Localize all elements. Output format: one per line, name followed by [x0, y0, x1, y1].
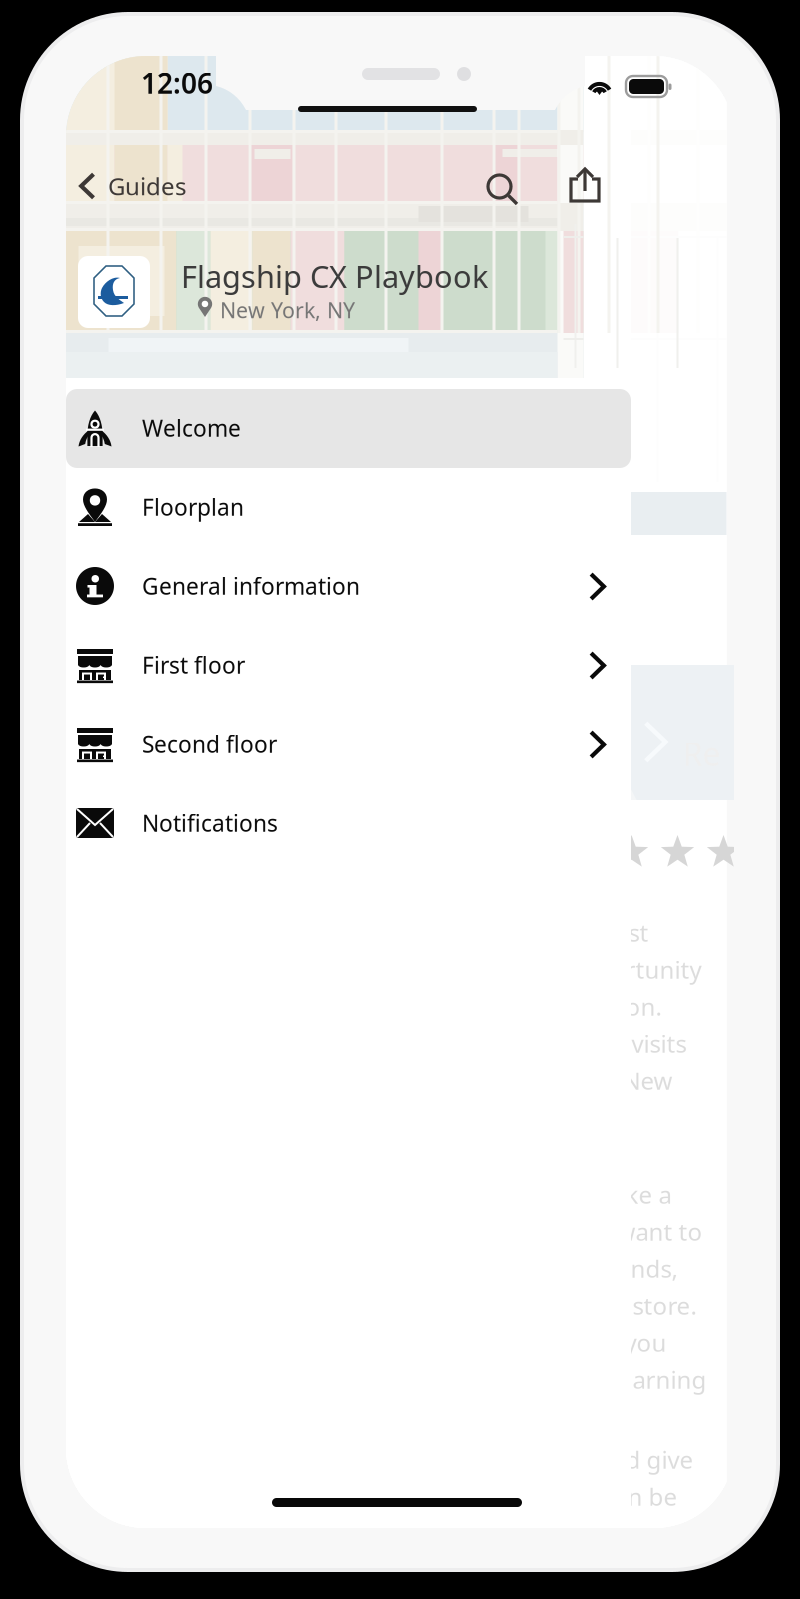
- staticText: ands,: [617, 1253, 677, 1284]
- staticText: Floorplan: [142, 492, 244, 522]
- staticText: Guides: [108, 170, 186, 202]
- button[interactable]: Notifications: [66, 784, 631, 863]
- button[interactable]: Second floor: [66, 705, 631, 784]
- button[interactable]: First floor: [66, 626, 631, 705]
- staticText: in New: [595, 1065, 672, 1096]
- staticText: best: [599, 917, 648, 948]
- staticText: make a: [590, 1179, 671, 1210]
- staticText: Second floor: [142, 729, 277, 759]
- staticText: 12:06: [141, 64, 213, 102]
- button[interactable]: Welcome: [66, 389, 631, 468]
- staticText: tion.: [610, 991, 661, 1022]
- button[interactable]: Search: [472, 156, 534, 216]
- button[interactable]: General information: [66, 547, 631, 626]
- staticText: and give: [597, 1444, 693, 1475]
- button[interactable]: Guides: [74, 158, 198, 214]
- staticText: Welcome: [142, 413, 241, 443]
- staticText: Flagship CX Playbook: [181, 256, 488, 296]
- staticText: General information: [142, 571, 360, 601]
- staticText: learning: [612, 1364, 706, 1395]
- staticText: u want to: [595, 1216, 702, 1247]
- staticText: New York, NY: [220, 296, 355, 324]
- staticText: f you: [610, 1327, 666, 1358]
- button[interactable]: Share: [553, 154, 615, 216]
- button[interactable]: Floorplan: [66, 468, 631, 547]
- staticText: r visits: [615, 1028, 686, 1059]
- staticText: can be: [602, 1481, 677, 1512]
- staticText: Notifications: [142, 808, 278, 838]
- staticText: e store.: [612, 1290, 696, 1321]
- staticText: First floor: [142, 650, 245, 680]
- staticText: opportunity: [565, 954, 701, 985]
